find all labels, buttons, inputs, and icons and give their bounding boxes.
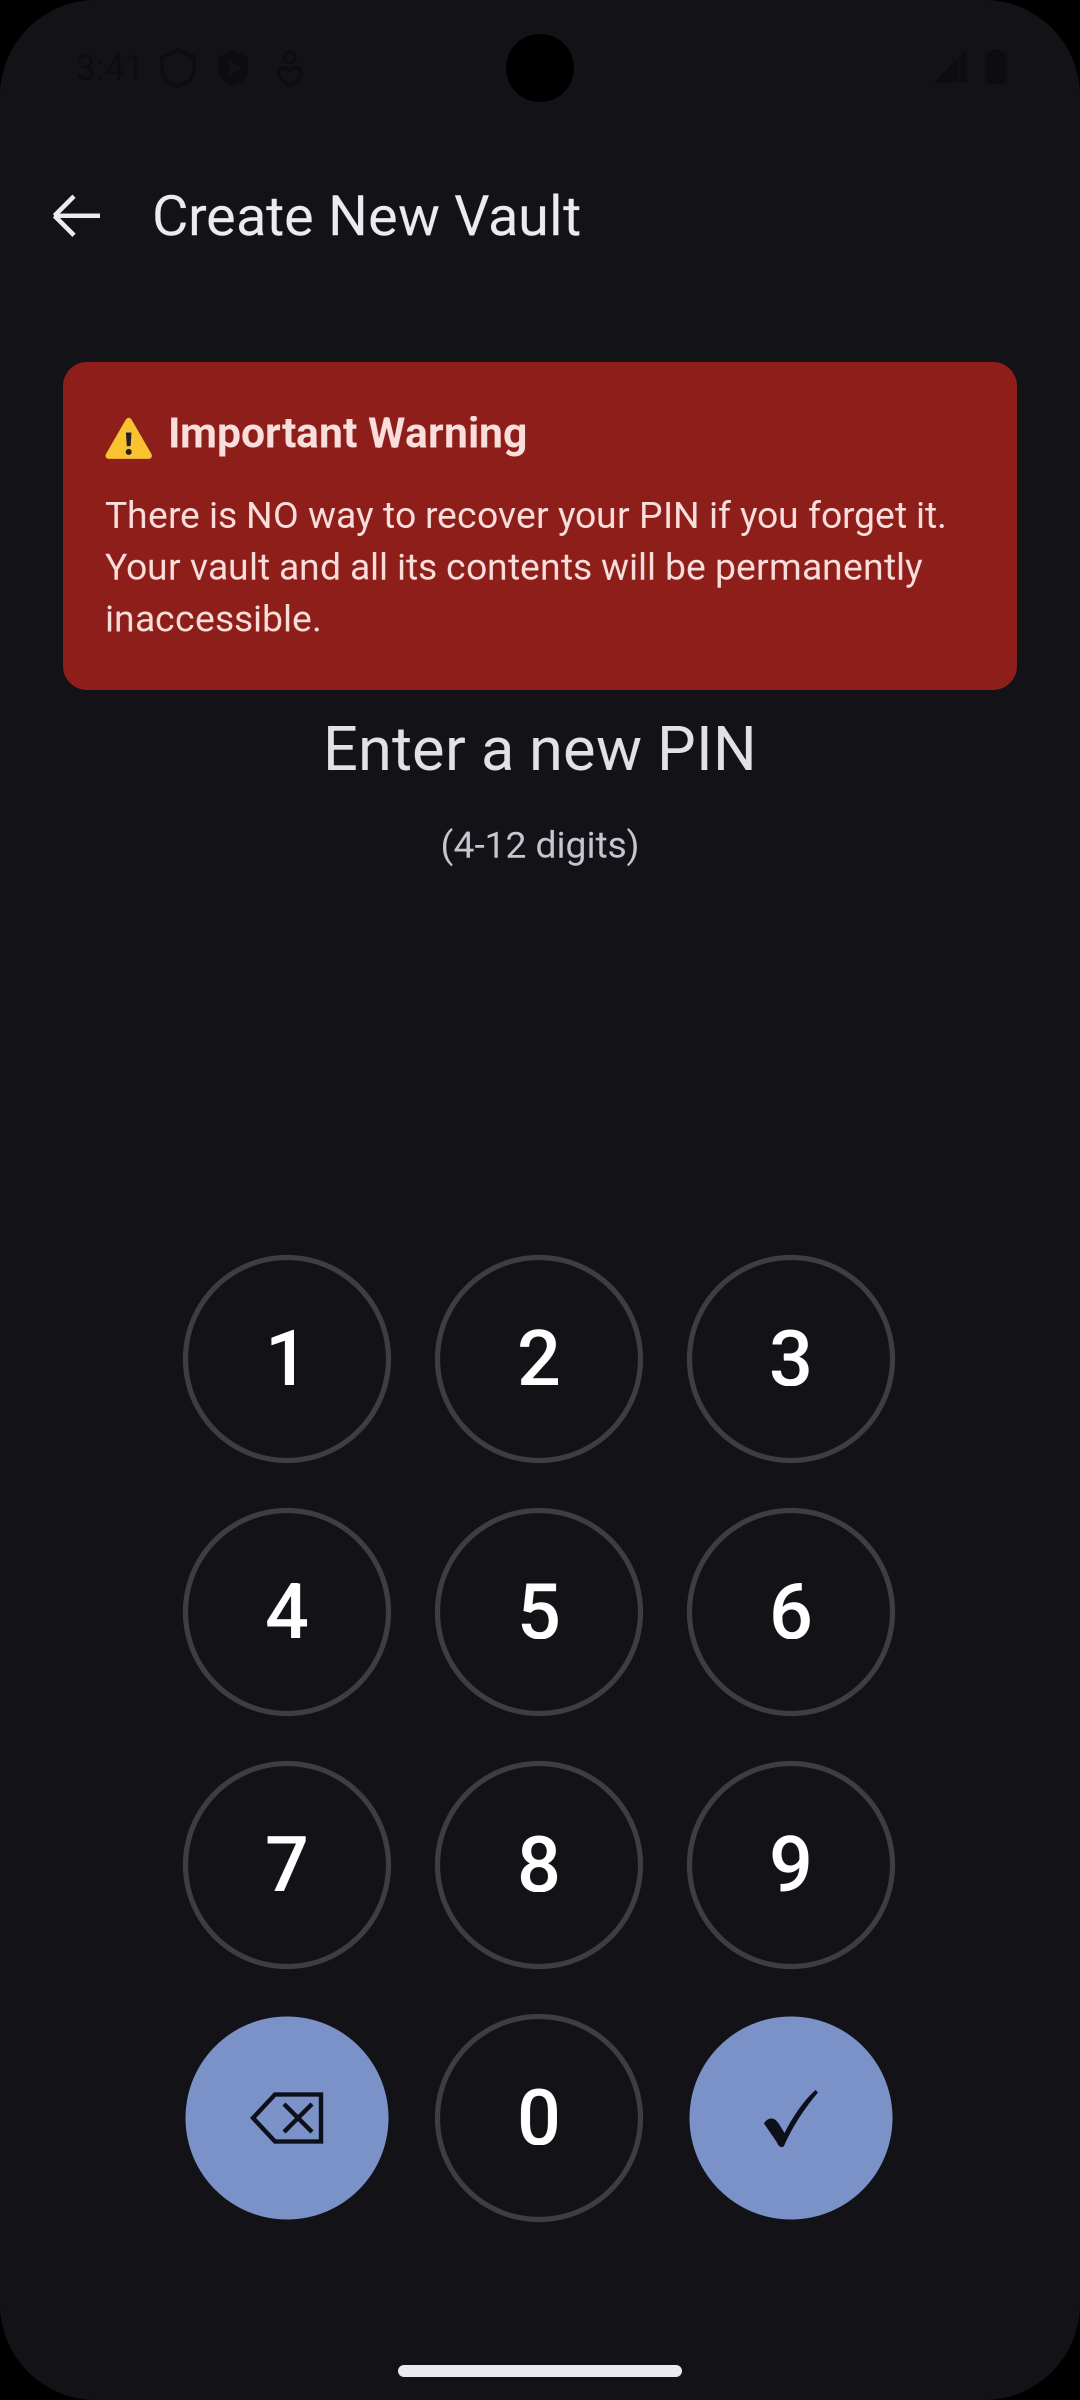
staticText: 5 (517, 1567, 561, 1657)
staticText: There is NO way to recover your PIN if y… (105, 493, 947, 641)
staticText: Important Warning (168, 408, 527, 458)
button[interactable]: 3 (689, 1257, 892, 1460)
staticText: 1 (265, 1314, 309, 1404)
button[interactable]: 6 (689, 1510, 892, 1713)
staticText: 2 (517, 1314, 561, 1404)
staticText: 9 (769, 1820, 813, 1910)
button[interactable]: 0 (437, 2016, 640, 2219)
staticText: 8 (517, 1820, 561, 1910)
staticText: Create New Vault (152, 183, 581, 249)
button[interactable]: Create New Vault (152, 160, 612, 272)
button[interactable]: Delete (185, 2016, 388, 2219)
staticText: 7 (265, 1820, 309, 1910)
staticText: 6 (769, 1567, 813, 1657)
button[interactable]: 4 (185, 1510, 388, 1713)
staticText: 4 (265, 1567, 309, 1657)
button[interactable]: 8 (437, 1763, 640, 1966)
button[interactable]: Back (21, 160, 133, 272)
staticText: (4-12 digits) (440, 823, 639, 867)
button[interactable]: 9 (689, 1763, 892, 1966)
staticText: Enter a new PIN (323, 713, 757, 785)
staticText: 0 (517, 2073, 561, 2163)
button[interactable]: 1 (185, 1257, 388, 1460)
staticText: 3 (769, 1314, 813, 1404)
button[interactable]: 7 (185, 1763, 388, 1966)
button[interactable]: 5 (437, 1510, 640, 1713)
button[interactable]: 2 (437, 1257, 640, 1460)
button[interactable]: Confirm (689, 2016, 892, 2219)
